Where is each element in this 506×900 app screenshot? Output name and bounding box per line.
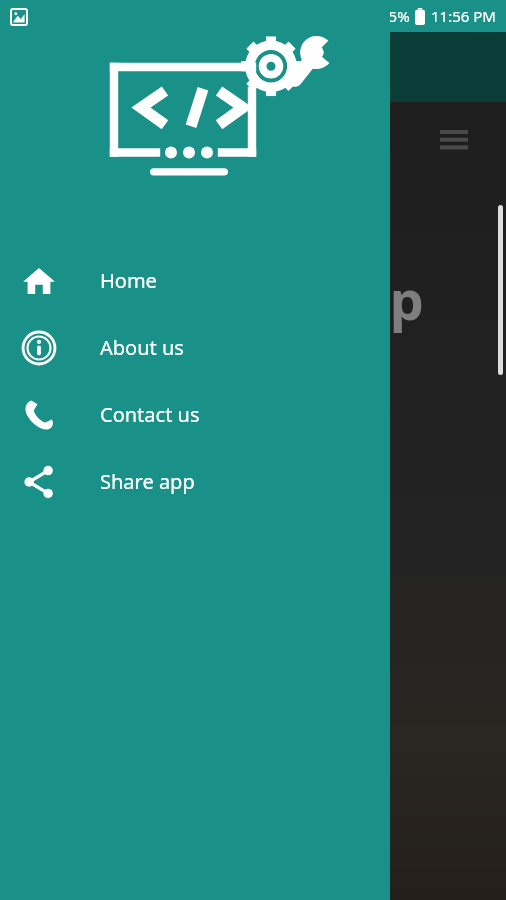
staticText: 95% — [380, 6, 410, 26]
staticText: student — [150, 410, 361, 484]
staticText: Contact us — [100, 401, 200, 428]
button[interactable]: Home — [0, 247, 390, 314]
staticText: Share app — [100, 468, 195, 495]
staticText: About us — [100, 334, 184, 361]
button[interactable]: Open navigation menu — [432, 118, 476, 162]
staticText: Bootcamp — [150, 262, 424, 336]
button[interactable]: Contact us — [0, 381, 390, 448]
staticText: where — [150, 336, 319, 410]
button[interactable]: About us — [0, 314, 390, 381]
staticText: 11:56 PM — [431, 6, 496, 26]
staticText: goals — [150, 484, 294, 558]
staticText: Home — [100, 267, 157, 294]
button[interactable]: Share app — [0, 448, 390, 515]
